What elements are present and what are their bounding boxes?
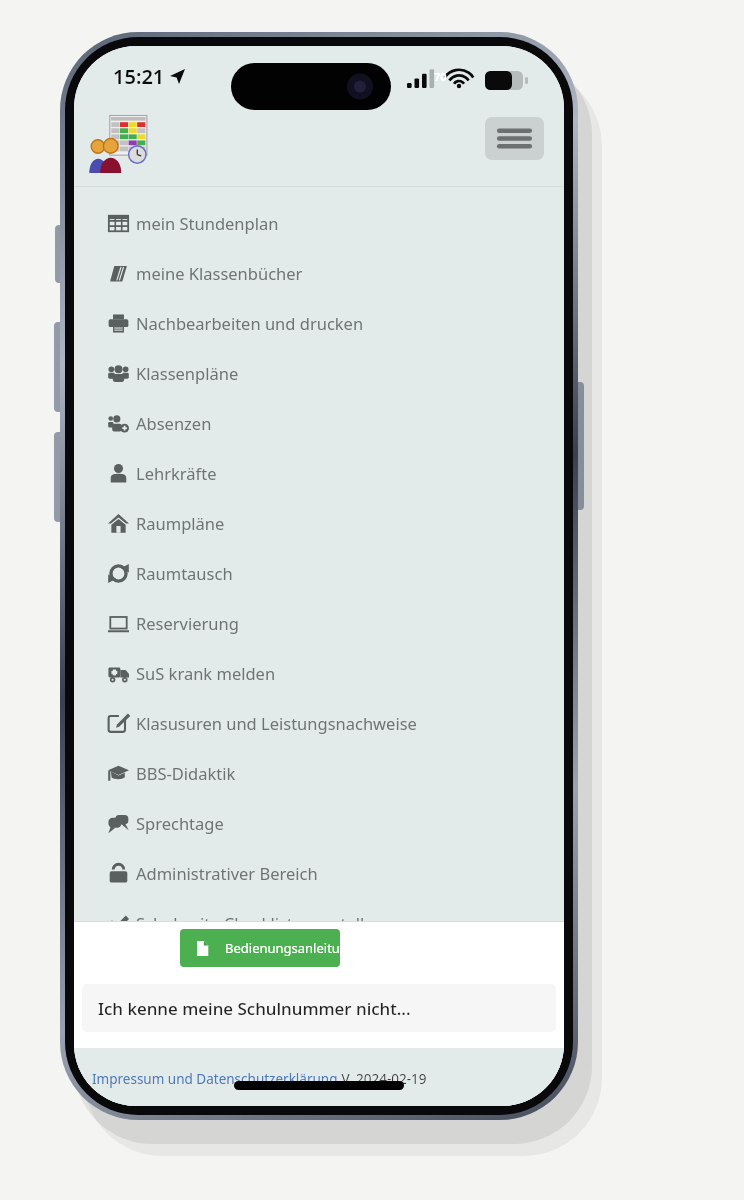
staticText: Raumtausch — [136, 562, 233, 584]
button[interactable]: Raumpläne — [74, 498, 564, 548]
button[interactable]: Menu — [485, 117, 544, 160]
staticText: Absenzen — [136, 412, 212, 434]
button[interactable]: Bedienungsanleitung — [180, 929, 340, 967]
staticText: Lehrkräfte — [136, 462, 217, 484]
staticText: 15:21 — [113, 63, 165, 90]
staticText: 70 — [434, 69, 447, 84]
button[interactable]: Raumtausch — [74, 548, 564, 598]
button[interactable]: Nachbearbeiten und drucken — [74, 298, 564, 348]
button[interactable]: BBS-Didaktik — [74, 748, 564, 798]
staticText: BBS-Didaktik — [136, 762, 236, 784]
button[interactable]: App logo — [88, 111, 152, 175]
staticText: SuS krank melden — [136, 662, 276, 684]
staticText: Schulweite Checklisten erstellen — [136, 912, 384, 934]
button[interactable]: Reservierung — [74, 598, 564, 648]
button[interactable]: meine Klassenbücher — [74, 248, 564, 298]
button[interactable]: Impressum und Datenschutzerklärung — [92, 1070, 338, 1088]
button[interactable]: Absenzen — [74, 398, 564, 448]
staticText: Klasusuren und Leistungsnachweise — [136, 712, 417, 734]
staticText: Raumpläne — [136, 512, 225, 534]
staticText: Reservierung — [136, 612, 239, 634]
staticText: V. 2024-02-19 — [338, 1070, 427, 1088]
button[interactable]: Sprechtage — [74, 798, 564, 848]
staticText: Ich kenne meine Schulnummer nicht... — [98, 997, 411, 1020]
staticText: Bedienungsanleitung — [225, 939, 340, 957]
button[interactable]: Administrativer Bereich — [74, 848, 564, 898]
staticText: Administrativer Bereich — [136, 862, 318, 884]
button[interactable]: Klassenpläne — [74, 348, 564, 398]
button[interactable]: mein Stundenplan — [74, 198, 564, 248]
staticText: meine Klassenbücher — [136, 262, 303, 284]
button[interactable]: SuS krank melden — [74, 648, 564, 698]
button[interactable]: Lehrkräfte — [74, 448, 564, 498]
button[interactable]: Ich kenne meine Schulnummer nicht... — [82, 984, 556, 1032]
button[interactable]: Klasusuren und Leistungsnachweise — [74, 698, 564, 748]
staticText: Klassenpläne — [136, 362, 239, 384]
button[interactable]: Schulweite Checklisten erstellen — [74, 898, 564, 948]
staticText: Sprechtage — [136, 812, 224, 834]
staticText: Nachbearbeiten und drucken — [136, 312, 364, 334]
staticText: mein Stundenplan — [136, 212, 279, 234]
